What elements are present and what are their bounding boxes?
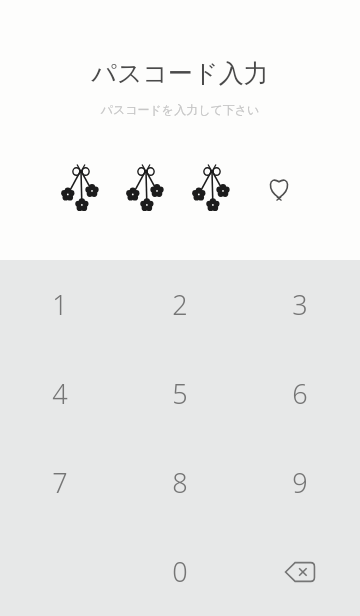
staticText: パスコードを入力して下さい xyxy=(0,102,360,117)
staticText: 4 xyxy=(52,375,68,412)
button[interactable]: 3 xyxy=(240,260,360,349)
staticText: 2 xyxy=(172,286,188,323)
button[interactable]: Delete xyxy=(240,527,360,616)
staticText: 3 xyxy=(292,286,308,323)
button[interactable]: 6 xyxy=(240,349,360,438)
staticText: 0 xyxy=(172,553,188,590)
button[interactable]: 1 xyxy=(0,260,120,349)
button[interactable]: 0 xyxy=(120,527,240,616)
staticText: 1 xyxy=(52,286,68,323)
button[interactable]: 4 xyxy=(0,349,120,438)
staticText: 5 xyxy=(172,375,188,412)
button[interactable]: 7 xyxy=(0,438,120,527)
staticText: パスコード入力 xyxy=(0,58,360,89)
button[interactable]: 9 xyxy=(240,438,360,527)
staticText: 8 xyxy=(172,464,188,501)
button[interactable]: 5 xyxy=(120,349,240,438)
button[interactable]: 2 xyxy=(120,260,240,349)
staticText: 9 xyxy=(292,464,308,501)
button[interactable]: 8 xyxy=(120,438,240,527)
staticText: 6 xyxy=(292,375,308,412)
staticText: 7 xyxy=(52,464,68,501)
